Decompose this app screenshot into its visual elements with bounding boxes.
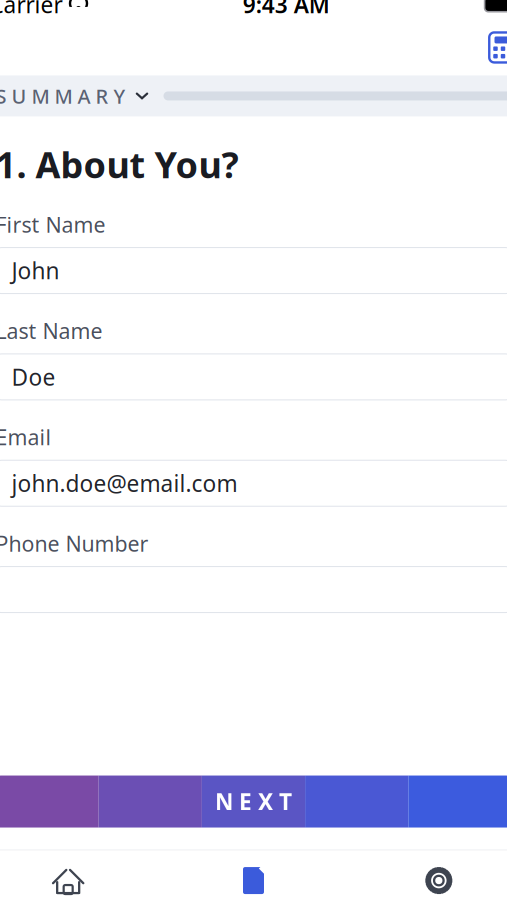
- button[interactable]: N E X T: [0, 776, 507, 828]
- staticText: Last Name: [0, 317, 102, 345]
- button[interactable]: John: [0, 248, 507, 294]
- button[interactable]: S U M M A R Y: [0, 83, 149, 109]
- staticText: Doe: [11, 362, 55, 392]
- staticText: Carrier: [0, 0, 62, 19]
- staticText: First Name: [0, 210, 105, 238]
- staticText: john.doe@email.com: [11, 468, 237, 498]
- staticText: Phone Number: [0, 529, 148, 557]
- staticText: 9:43 AM: [243, 0, 330, 19]
- staticText: N E X T: [215, 786, 292, 817]
- button[interactable]: Settings: [346, 851, 507, 900]
- staticText: Email: [0, 423, 51, 451]
- button[interactable]: Forms: [161, 851, 346, 900]
- button[interactable]: Doe: [0, 354, 507, 400]
- staticText: John: [11, 255, 59, 286]
- button[interactable]: [0, 567, 507, 613]
- staticText: S U M M A R Y: [0, 83, 125, 109]
- button[interactable]: john.doe@email.com: [0, 460, 507, 506]
- button[interactable]: Home: [0, 851, 161, 900]
- button[interactable]: Calculator: [474, 24, 507, 71]
- staticText: 1. About You?: [0, 140, 238, 188]
